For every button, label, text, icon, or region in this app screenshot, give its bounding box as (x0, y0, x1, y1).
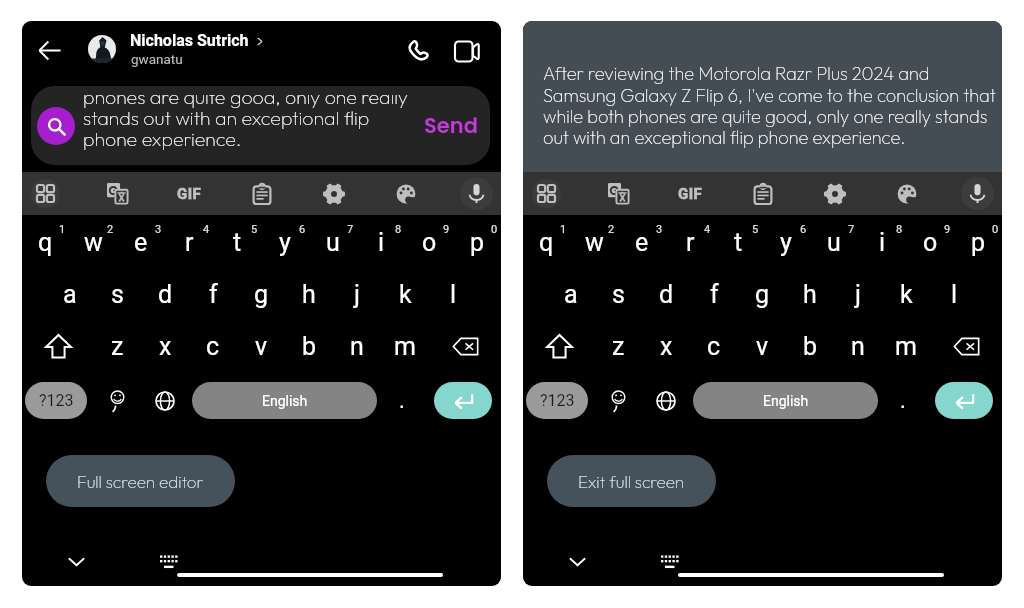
button[interactable]: z (595, 321, 642, 371)
button[interactable]: Search (37, 107, 75, 145)
button[interactable]: ?123 (526, 382, 588, 419)
button[interactable]: a (547, 269, 594, 319)
staticText: u (827, 228, 841, 257)
button[interactable]: j (834, 269, 882, 319)
button[interactable]: t (714, 217, 762, 267)
button[interactable]: c (690, 321, 738, 371)
button[interactable]: Backspace (429, 321, 501, 371)
button[interactable]: n (834, 321, 882, 371)
button[interactable]: k (882, 269, 930, 319)
button[interactable]: Enter (935, 382, 993, 419)
button[interactable]: Shift (523, 321, 595, 371)
button[interactable]: Clipboard (240, 172, 283, 215)
button[interactable]: i (357, 217, 405, 267)
button[interactable]: s (93, 269, 141, 319)
button[interactable]: Voice input (956, 172, 999, 215)
button[interactable]: Emoji (600, 382, 637, 419)
button[interactable]: v (237, 321, 285, 371)
button[interactable]: Call (398, 31, 438, 71)
button[interactable]: h (285, 269, 333, 319)
button[interactable]: English (693, 382, 878, 419)
button[interactable]: Settings (312, 172, 355, 215)
button[interactable]: u (810, 217, 858, 267)
button[interactable]: i (858, 217, 906, 267)
button[interactable]: s (594, 269, 642, 319)
button[interactable]: Translate (96, 172, 139, 215)
button[interactable]: . (884, 382, 921, 419)
button[interactable]: Voice input (455, 172, 498, 215)
button[interactable]: o (405, 217, 453, 267)
button[interactable]: m (882, 321, 930, 371)
button[interactable]: l (429, 269, 477, 319)
button[interactable]: m (381, 321, 429, 371)
button[interactable]: English (192, 382, 377, 419)
button[interactable]: Send (420, 107, 482, 144)
button[interactable]: Backspace (930, 321, 1002, 371)
button[interactable]: g (738, 269, 786, 319)
button[interactable]: Switch keyboard (152, 544, 186, 578)
button[interactable]: c (189, 321, 237, 371)
button[interactable]: h (786, 269, 834, 319)
button[interactable]: l (930, 269, 978, 319)
button[interactable]: k (381, 269, 429, 319)
staticText: d (158, 280, 173, 309)
button[interactable]: j (333, 269, 381, 319)
button[interactable]: w (570, 217, 618, 267)
button[interactable]: o (906, 217, 954, 267)
button[interactable]: r (165, 217, 213, 267)
staticText: 4 (704, 223, 711, 236)
button[interactable]: b (786, 321, 834, 371)
button[interactable]: n (333, 321, 381, 371)
button[interactable]: Full screen editor (46, 455, 235, 507)
button[interactable]: u (309, 217, 357, 267)
button[interactable]: Video call (446, 31, 486, 71)
button[interactable]: z (94, 321, 141, 371)
staticText: o (923, 228, 938, 257)
button[interactable]: x (141, 321, 189, 371)
button[interactable]: p (954, 217, 1002, 267)
button[interactable]: b (285, 321, 333, 371)
button[interactable]: f (690, 269, 738, 319)
button[interactable]: g (237, 269, 285, 319)
button[interactable]: y (762, 217, 810, 267)
button[interactable]: d (642, 269, 690, 319)
button[interactable]: . (383, 382, 420, 419)
button[interactable]: f (189, 269, 237, 319)
button[interactable]: GIF (669, 172, 712, 215)
button[interactable]: v (738, 321, 786, 371)
staticText: s (612, 280, 625, 309)
button[interactable]: p (453, 217, 501, 267)
button[interactable]: Change language (146, 382, 183, 419)
button[interactable]: e (117, 217, 165, 267)
button[interactable]: Translate (597, 172, 640, 215)
button[interactable]: Settings (813, 172, 856, 215)
button[interactable]: GIF (168, 172, 211, 215)
button[interactable]: y (261, 217, 309, 267)
button[interactable]: x (642, 321, 690, 371)
button[interactable]: Emoji (99, 382, 136, 419)
button[interactable]: q (22, 217, 69, 267)
button[interactable]: e (618, 217, 666, 267)
button[interactable]: Enter (434, 382, 492, 419)
button[interactable]: a (46, 269, 93, 319)
button[interactable]: Themes (384, 172, 427, 215)
button[interactable]: w (69, 217, 117, 267)
button[interactable]: Shift (22, 321, 94, 371)
button[interactable]: d (141, 269, 189, 319)
button[interactable]: Clipboard (741, 172, 784, 215)
button[interactable]: Change language (647, 382, 684, 419)
button[interactable]: Hide keyboard (560, 544, 594, 578)
button[interactable]: ?123 (25, 382, 87, 419)
button[interactable]: Hide keyboard (59, 544, 93, 578)
button[interactable]: t (213, 217, 261, 267)
button[interactable]: Apps (525, 172, 568, 215)
button[interactable]: Switch keyboard (653, 544, 687, 578)
button[interactable]: r (666, 217, 714, 267)
button[interactable]: Profile photo (88, 35, 116, 63)
button[interactable]: Exit full screen (547, 455, 716, 507)
button[interactable]: q (523, 217, 570, 267)
staticText: 5 (752, 223, 759, 236)
button[interactable]: Themes (885, 172, 928, 215)
button[interactable]: Apps (24, 172, 67, 215)
button[interactable]: Back (31, 32, 67, 68)
